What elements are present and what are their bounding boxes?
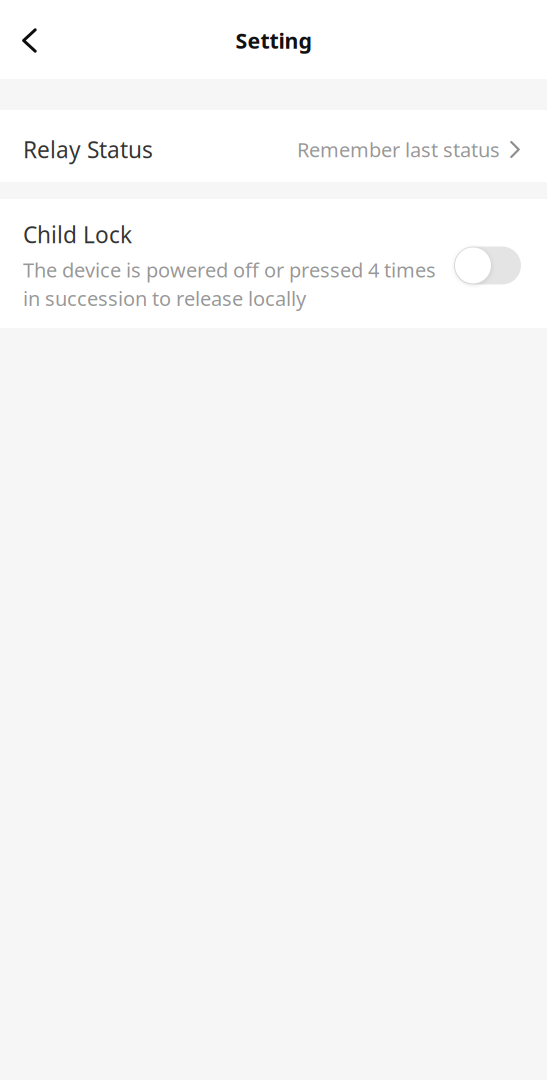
- staticText: in succession to release locally: [23, 285, 306, 312]
- staticText: Setting: [235, 26, 311, 55]
- staticText: Relay Status: [23, 134, 153, 164]
- button[interactable]: Relay Status: [0, 110, 547, 182]
- staticText: Remember last status: [297, 136, 500, 163]
- staticText: The device is powered off or pressed 4 t…: [23, 256, 436, 283]
- button[interactable]: Back: [0, 11, 55, 68]
- button[interactable]: Child Lock, off: [454, 246, 521, 284]
- staticText: Child Lock: [23, 219, 132, 249]
